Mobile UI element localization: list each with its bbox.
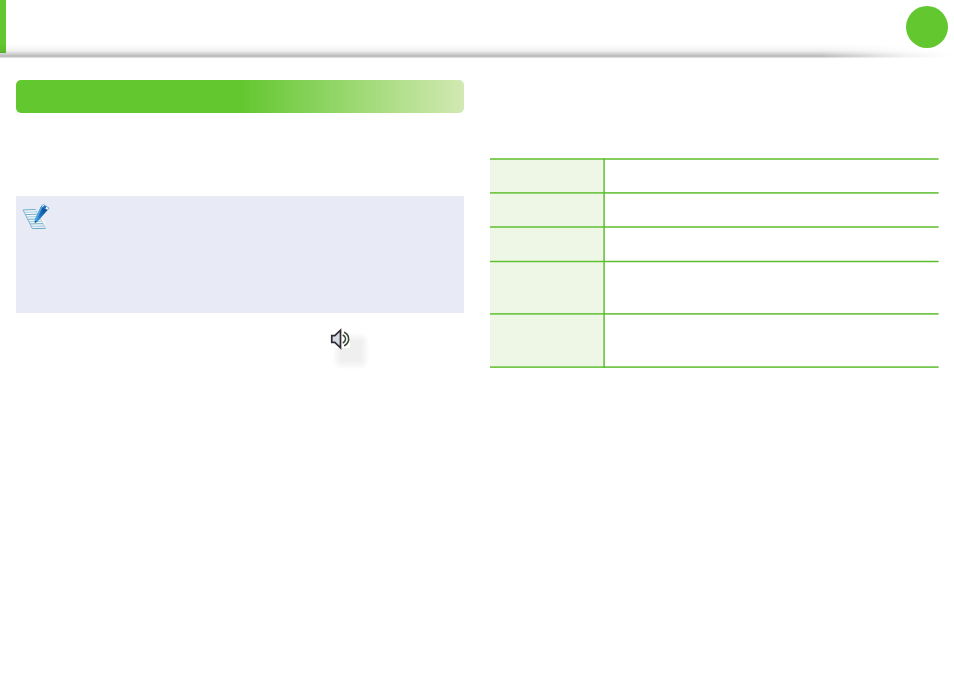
button[interactable]: Play sound [331, 329, 350, 349]
button[interactable]: Page indicator [906, 6, 948, 48]
